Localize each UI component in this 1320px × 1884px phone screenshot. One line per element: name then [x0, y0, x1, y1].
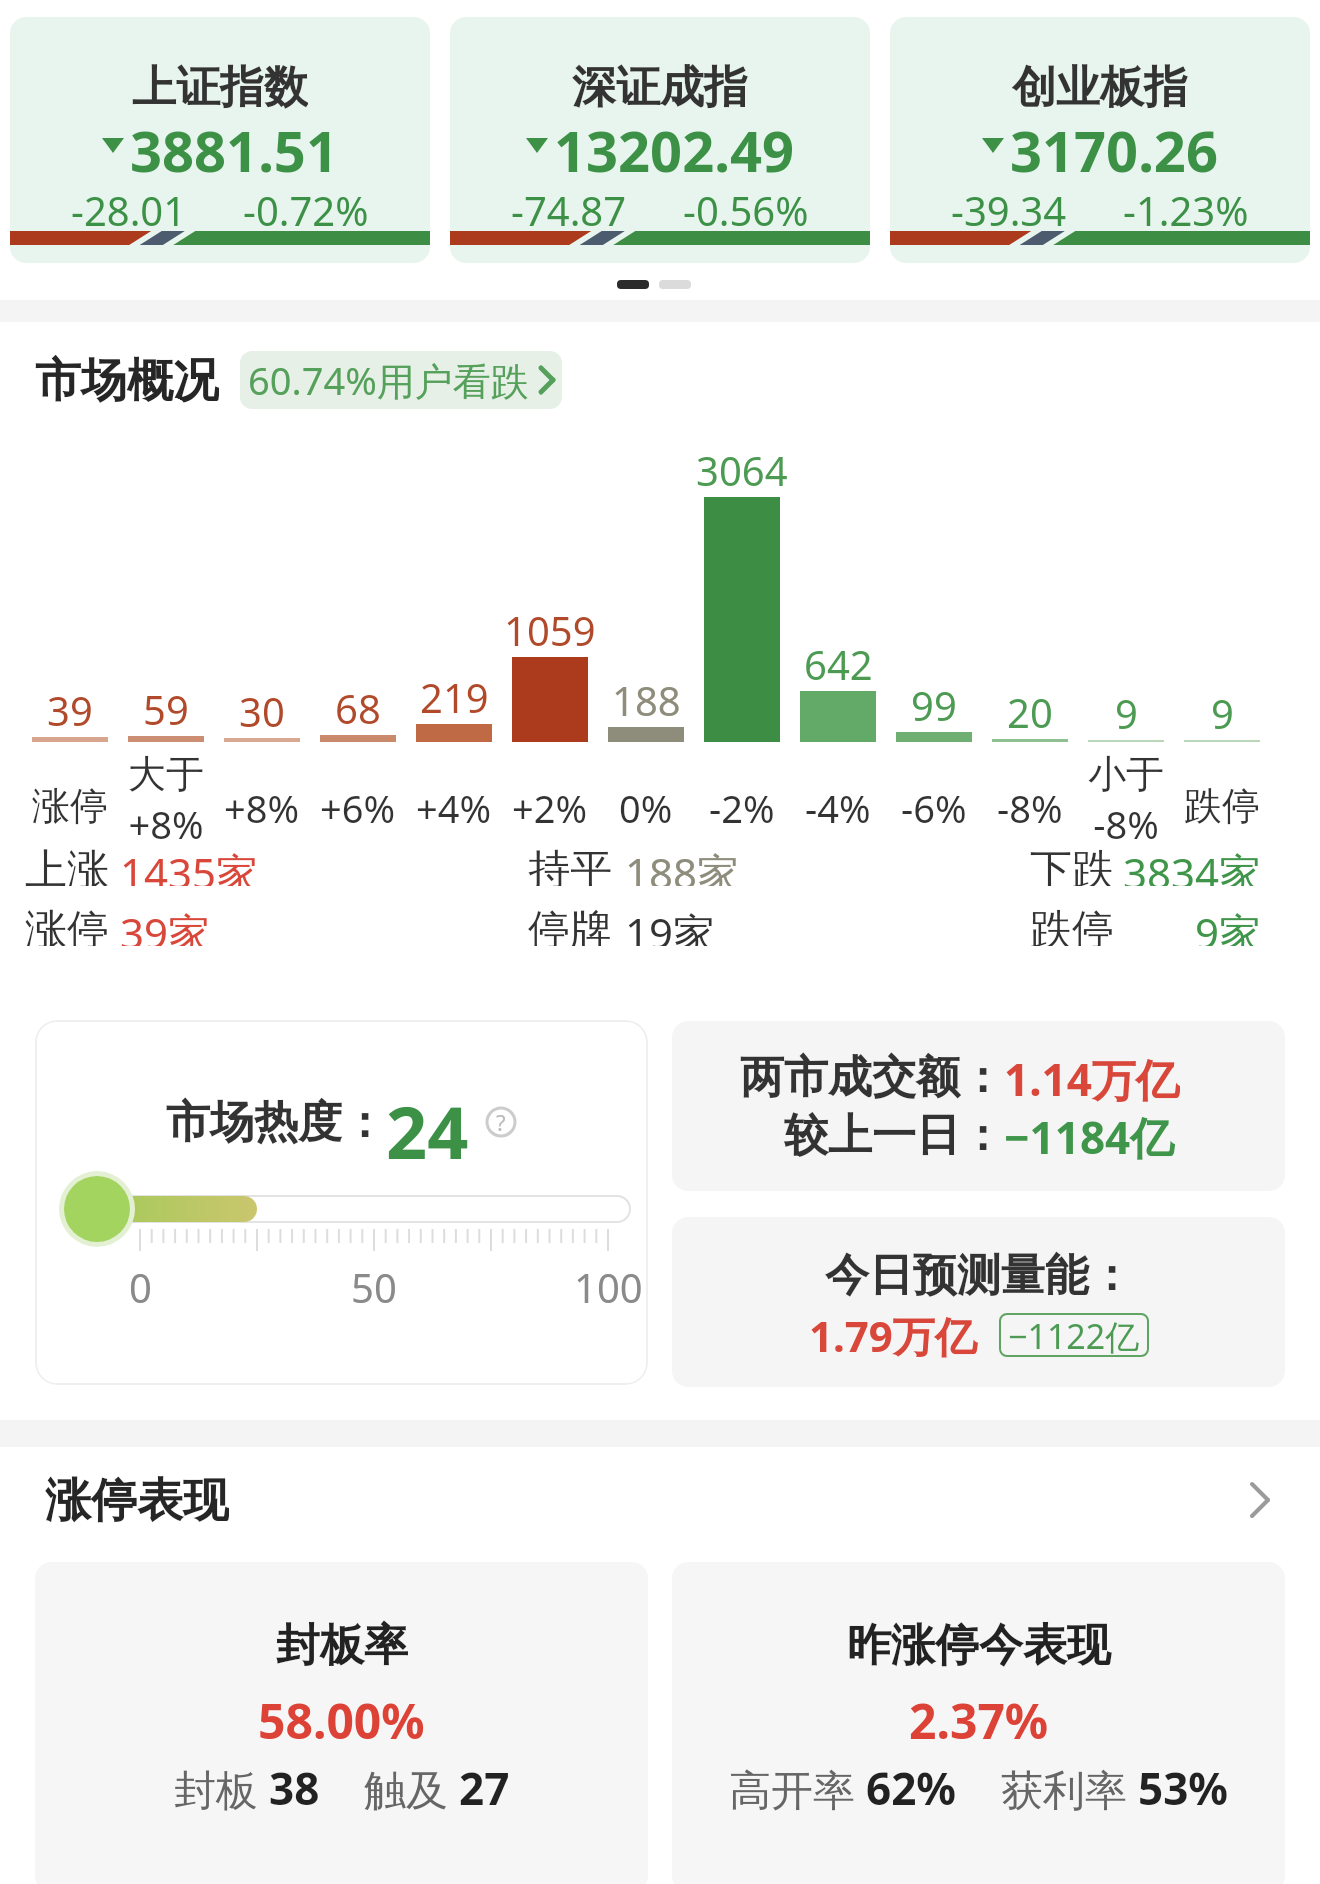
staticText: +8% [224, 782, 300, 828]
staticText: 30 [239, 684, 285, 730]
button[interactable]: 今日预测量能： [672, 1217, 1285, 1387]
staticText: 大于 [128, 750, 204, 798]
staticText: 100 [574, 1260, 643, 1306]
staticText: 获利率 [1001, 1760, 1138, 1817]
staticText: 触及 [364, 1760, 459, 1817]
staticText: 上涨 [25, 844, 109, 886]
staticText: 深证成指 [572, 60, 748, 110]
staticText: +2% [512, 782, 588, 828]
staticText: 高开率 [729, 1760, 866, 1817]
staticText: 188家 [625, 844, 740, 886]
staticText: 219 [420, 670, 489, 716]
staticText: 市场热度： [166, 1095, 386, 1150]
staticText: 99 [911, 678, 957, 724]
staticText: -0.56% [683, 183, 809, 229]
button[interactable]: 昨涨停今表现 [672, 1562, 1285, 1884]
staticText: 下跌 [1030, 844, 1114, 886]
staticText: 39 [47, 683, 93, 729]
staticText: 59 [143, 682, 189, 728]
staticText: 两市成交额： [740, 1050, 1004, 1105]
staticText: ? [496, 1107, 506, 1137]
staticText: -2% [709, 782, 775, 828]
staticText: 封板 [174, 1760, 269, 1817]
staticText: -1.23% [1123, 183, 1249, 229]
staticText: 24 [386, 1082, 469, 1162]
staticText: 创业板指 [1012, 60, 1188, 110]
staticText: 停牌 [528, 904, 612, 946]
staticText: 今日预测量能： [825, 1248, 1133, 1303]
staticText: +6% [320, 782, 396, 828]
staticText: 9 [1211, 686, 1234, 732]
staticText: 跌停 [1030, 904, 1114, 946]
staticText: 1.14万亿 [1004, 1049, 1180, 1105]
staticText: 1435家 [120, 844, 259, 886]
staticText: 涨停 [32, 782, 108, 828]
button[interactable]: 上证指数 [10, 17, 430, 263]
staticText: 58.00% [258, 1688, 425, 1748]
staticText: −1184亿 [1004, 1107, 1175, 1163]
staticText: -8% [1093, 798, 1159, 846]
staticText: 3834家 [1123, 844, 1262, 886]
staticText: 封板率 [276, 1618, 408, 1673]
staticText: -74.87 [511, 183, 627, 229]
staticText: 0% [619, 782, 673, 828]
button[interactable]: 60.74%用户看跌 [240, 351, 562, 409]
staticText: 3881.51 [130, 112, 338, 178]
staticText: 2.37% [909, 1688, 1049, 1748]
staticText: 9 [1115, 686, 1138, 732]
staticText: 38 [269, 1758, 320, 1818]
staticText: 68 [335, 681, 381, 727]
staticText: 3170.26 [1010, 112, 1218, 178]
staticText: 27 [459, 1758, 510, 1818]
staticText: -28.01 [71, 183, 187, 229]
staticText: -6% [901, 782, 967, 828]
staticText: 1.79万亿 [809, 1307, 977, 1364]
staticText: 市场概况 [35, 352, 219, 408]
staticText: 50 [351, 1260, 397, 1306]
staticText: -8% [997, 782, 1063, 828]
staticText: 62% [866, 1758, 957, 1818]
staticText: 跌停 [1184, 782, 1260, 828]
staticText: +4% [416, 782, 492, 828]
staticText: 涨停 [25, 904, 109, 946]
button[interactable]: −1122亿 [999, 1313, 1149, 1357]
staticText: 0 [129, 1260, 152, 1306]
button[interactable]: 封板率 [35, 1562, 648, 1884]
staticText: 上证指数 [132, 60, 308, 110]
button[interactable]: 深证成指 [450, 17, 870, 263]
staticText: 昨涨停今表现 [847, 1618, 1111, 1673]
staticText: +8% [128, 798, 204, 846]
button[interactable]: 市场热度： [35, 1020, 648, 1385]
button[interactable]: 创业板指 [890, 17, 1310, 263]
staticText: 较上一日： [784, 1108, 1004, 1163]
button[interactable] [1230, 1468, 1290, 1532]
staticText: 13202.49 [554, 112, 794, 178]
button[interactable]: 两市成交额： [672, 1021, 1285, 1191]
staticText: −1122亿 [1008, 1313, 1140, 1357]
staticText: 642 [804, 637, 873, 683]
staticText: -0.72% [243, 183, 369, 229]
staticText: 19家 [625, 904, 716, 946]
staticText: -4% [805, 782, 871, 828]
staticText: -39.34 [951, 183, 1067, 229]
staticText: 持平 [528, 844, 612, 886]
staticText: 涨停表现 [45, 1472, 229, 1528]
staticText: 53% [1138, 1758, 1229, 1818]
staticText: 39家 [120, 904, 211, 946]
staticText: 3064 [696, 443, 788, 489]
staticText: 1059 [504, 603, 596, 649]
staticText: 小于 [1088, 750, 1164, 798]
staticText: 60.74%用户看跌 [248, 354, 529, 406]
staticText: 188 [612, 673, 681, 719]
staticText: 9家 [1195, 904, 1262, 946]
staticText: 20 [1007, 685, 1053, 731]
